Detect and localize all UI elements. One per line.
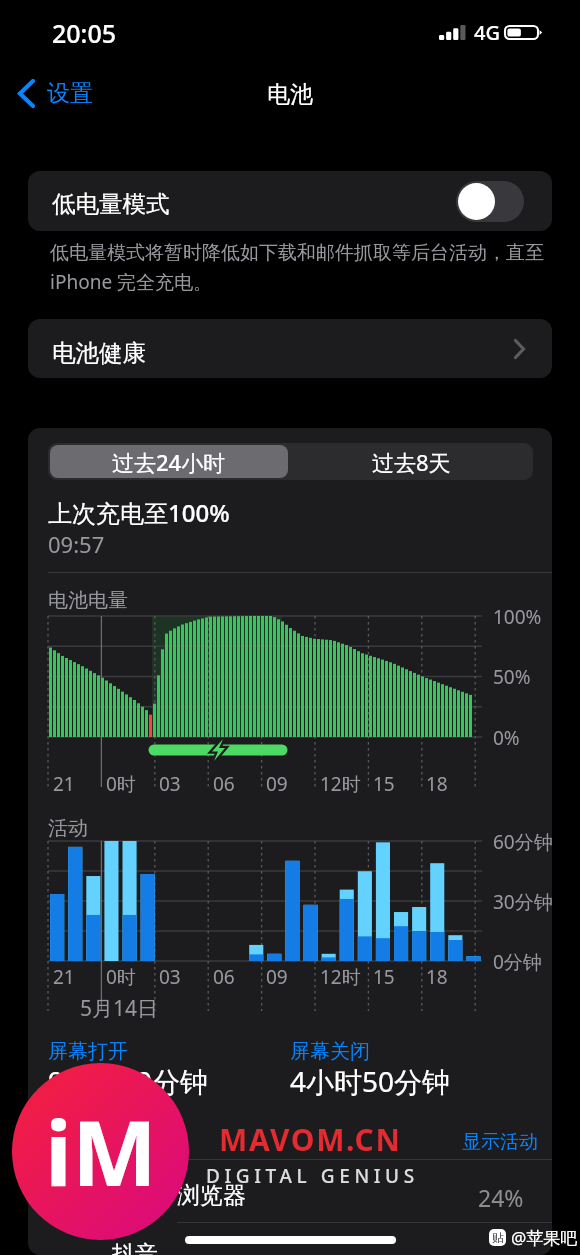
button[interactable]: 过去8天 — [290, 443, 533, 480]
staticText: 活动 — [48, 816, 88, 841]
button[interactable]: 浏览器 — [28, 1160, 552, 1220]
staticText: 电池健康 — [52, 338, 146, 368]
staticText: 60分钟 — [493, 829, 552, 855]
staticText: 06 — [213, 964, 235, 990]
staticText: 浏览器 — [177, 1181, 246, 1210]
staticText: 20:05 — [52, 16, 117, 50]
staticText: 100% — [493, 604, 542, 630]
staticText: 24% — [478, 1182, 524, 1213]
staticText: 设置 — [47, 79, 93, 108]
staticText: iPhone 完全充电。 — [50, 269, 213, 295]
staticText: 03 — [159, 964, 181, 990]
staticText: @苹果吧 — [511, 1226, 578, 1249]
staticText: 03 — [159, 771, 181, 797]
staticText: 4小时50分钟 — [290, 1062, 451, 1100]
staticText: 18 — [426, 771, 448, 797]
staticText: 12时 — [320, 771, 361, 797]
button[interactable]: 设置 — [18, 74, 93, 112]
staticText: MAVOM.CN — [219, 1119, 402, 1160]
staticText: 15 — [373, 771, 395, 797]
button[interactable]: Low Power Mode toggle — [456, 181, 524, 222]
button[interactable]: 过去24小时 — [50, 445, 288, 478]
staticText: 屏幕关闭 — [290, 1039, 370, 1064]
staticText: 0% — [493, 725, 520, 751]
staticText: 12时 — [320, 964, 361, 990]
button[interactable]: 低电量模式 — [28, 171, 552, 231]
staticText: 0时 — [106, 771, 136, 797]
staticText: 过去24小时 — [112, 447, 226, 477]
staticText: 5月14日 — [80, 994, 159, 1023]
staticText: 4G — [474, 19, 500, 46]
staticText: 0时 — [106, 964, 136, 990]
staticText: 低电量模式 — [52, 189, 170, 219]
staticText: 30分钟 — [493, 889, 552, 915]
staticText: 9小时20分钟 — [48, 1062, 209, 1100]
staticText: 电池电量 — [48, 588, 128, 613]
staticText: 贴 — [492, 1230, 504, 1245]
staticText: 18 — [426, 964, 448, 990]
staticText: 50% — [493, 664, 531, 690]
button[interactable]: 电池健康 — [28, 319, 552, 378]
staticText: 09 — [266, 771, 288, 797]
staticText: 过去8天 — [372, 447, 451, 477]
staticText: 上次充电至100% — [48, 496, 230, 529]
button[interactable]: 显示活动 — [462, 1130, 538, 1154]
staticText: 21 — [53, 771, 75, 797]
staticText: 低电量模式将暂时降低如下载和邮件抓取等后台活动，直至 — [50, 241, 544, 265]
staticText: 09:57 — [48, 529, 105, 559]
staticText: iM — [45, 1090, 157, 1213]
staticText: 抖音 — [112, 1240, 158, 1255]
staticText: 15 — [373, 964, 395, 990]
staticText: 06 — [213, 771, 235, 797]
staticText: 0分钟 — [493, 949, 542, 975]
staticText: 电池 — [267, 80, 313, 109]
staticText: 09 — [266, 964, 288, 990]
staticText: 21 — [53, 964, 75, 990]
staticText: 屏幕打开 — [48, 1039, 128, 1064]
staticText: DIGITAL GENIUS — [206, 1163, 419, 1189]
